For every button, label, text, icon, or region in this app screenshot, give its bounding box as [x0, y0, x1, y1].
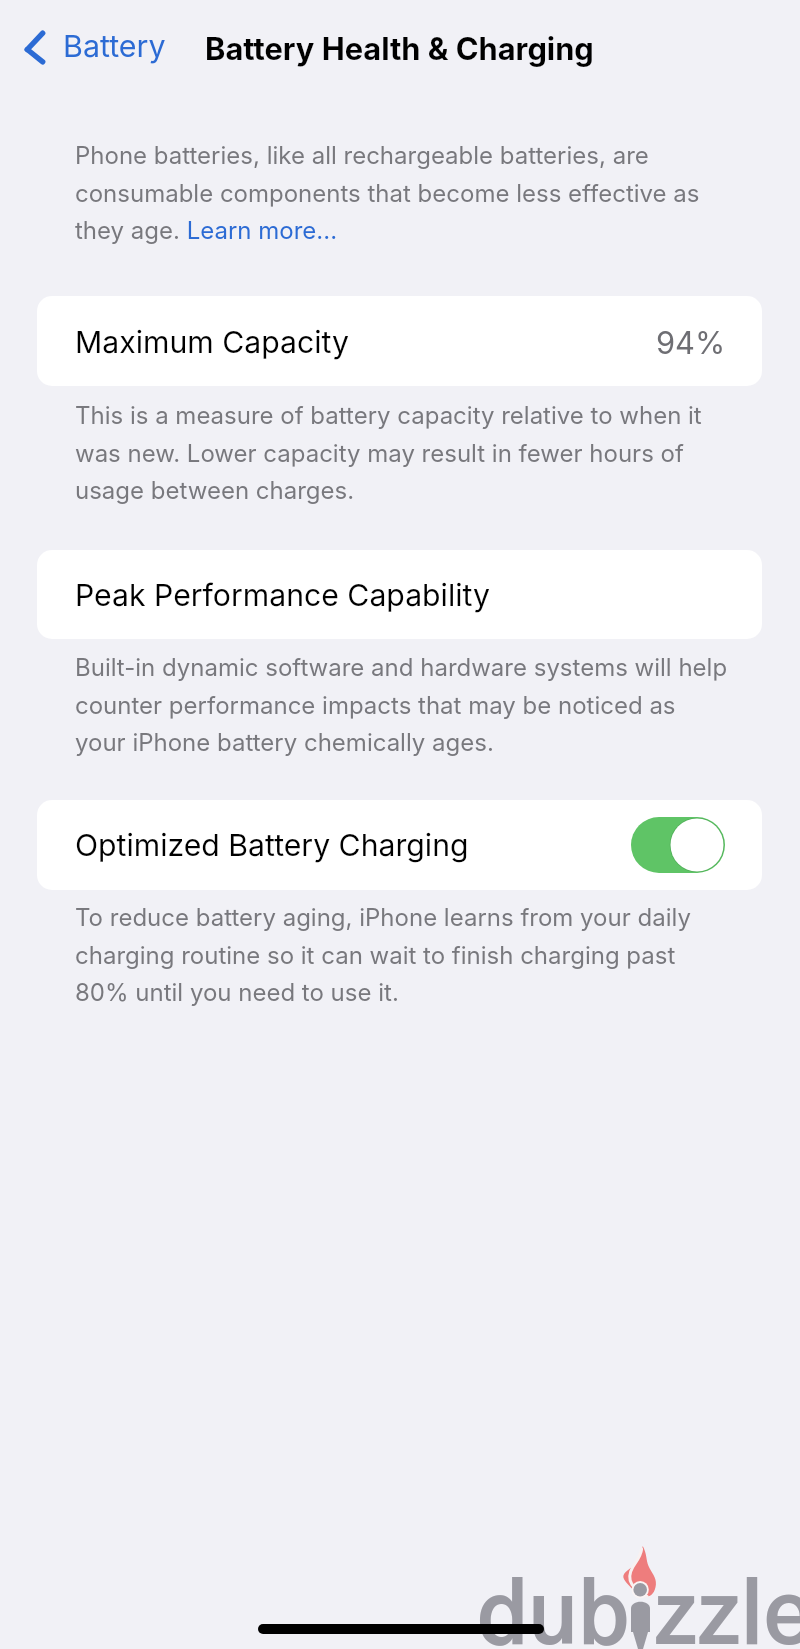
- button[interactable]: Back to Battery: [16, 18, 176, 76]
- button[interactable]: Maximum Capacity: [37, 296, 762, 386]
- staticText: To reduce battery aging, iPhone learns f…: [75, 903, 730, 1008]
- staticText: Maximum Capacity: [75, 324, 349, 361]
- staticText: 94%: [656, 324, 726, 361]
- button[interactable]: Optimized Battery Charging: [37, 800, 762, 890]
- staticText: dub: [477, 1577, 630, 1649]
- staticText: Peak Performance Capability: [75, 577, 490, 614]
- staticText: This is a measure of battery capacity re…: [75, 401, 730, 506]
- staticText: zzle: [654, 1577, 800, 1649]
- button[interactable]: Learn more: [186, 214, 338, 248]
- button[interactable]: Optimized Battery Charging toggle: [631, 817, 725, 873]
- staticText: Phone batteries, like all rechargeable b…: [75, 141, 730, 246]
- staticText: Optimized Battery Charging: [75, 827, 469, 864]
- staticText: Built-in dynamic software and hardware s…: [75, 653, 730, 758]
- button[interactable]: Peak Performance Capability: [37, 550, 762, 639]
- staticText: Battery: [63, 28, 166, 65]
- staticText: Battery Health & Charging: [205, 30, 594, 67]
